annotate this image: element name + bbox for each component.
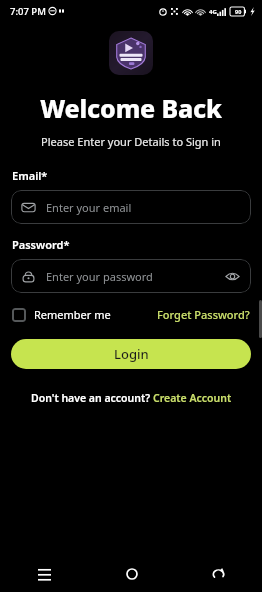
button[interactable]: Recents: [0, 555, 88, 592]
button[interactable]: Enter your email: [11, 190, 251, 224]
button[interactable]: Remember me: [12, 304, 111, 325]
staticText: Please Enter your Details to Sign in: [0, 134, 262, 149]
staticText: Create Account: [153, 391, 232, 405]
button[interactable]: Show password: [223, 267, 241, 285]
staticText: Don't have an account?: [31, 391, 153, 405]
staticText: Login: [114, 345, 149, 363]
staticText: 7:07 PM: [10, 5, 46, 18]
staticText: 4G: [209, 8, 217, 16]
button[interactable]: Back: [175, 555, 262, 592]
staticText: Password*: [12, 237, 70, 252]
button[interactable]: Forget Password?: [157, 304, 250, 325]
button[interactable]: Home: [88, 555, 175, 592]
button[interactable]: Create Account: [153, 391, 232, 405]
staticText: 90: [235, 8, 242, 15]
button[interactable]: Enter your password: [11, 259, 251, 293]
staticText: Email*: [12, 168, 48, 183]
staticText: Enter your email: [46, 200, 132, 215]
button[interactable]: Login: [11, 339, 251, 369]
staticText: Remember me: [34, 307, 111, 322]
staticText: Welcome Back: [0, 91, 262, 125]
staticText: Forget Password?: [157, 307, 250, 322]
staticText: Enter your password: [46, 269, 153, 284]
